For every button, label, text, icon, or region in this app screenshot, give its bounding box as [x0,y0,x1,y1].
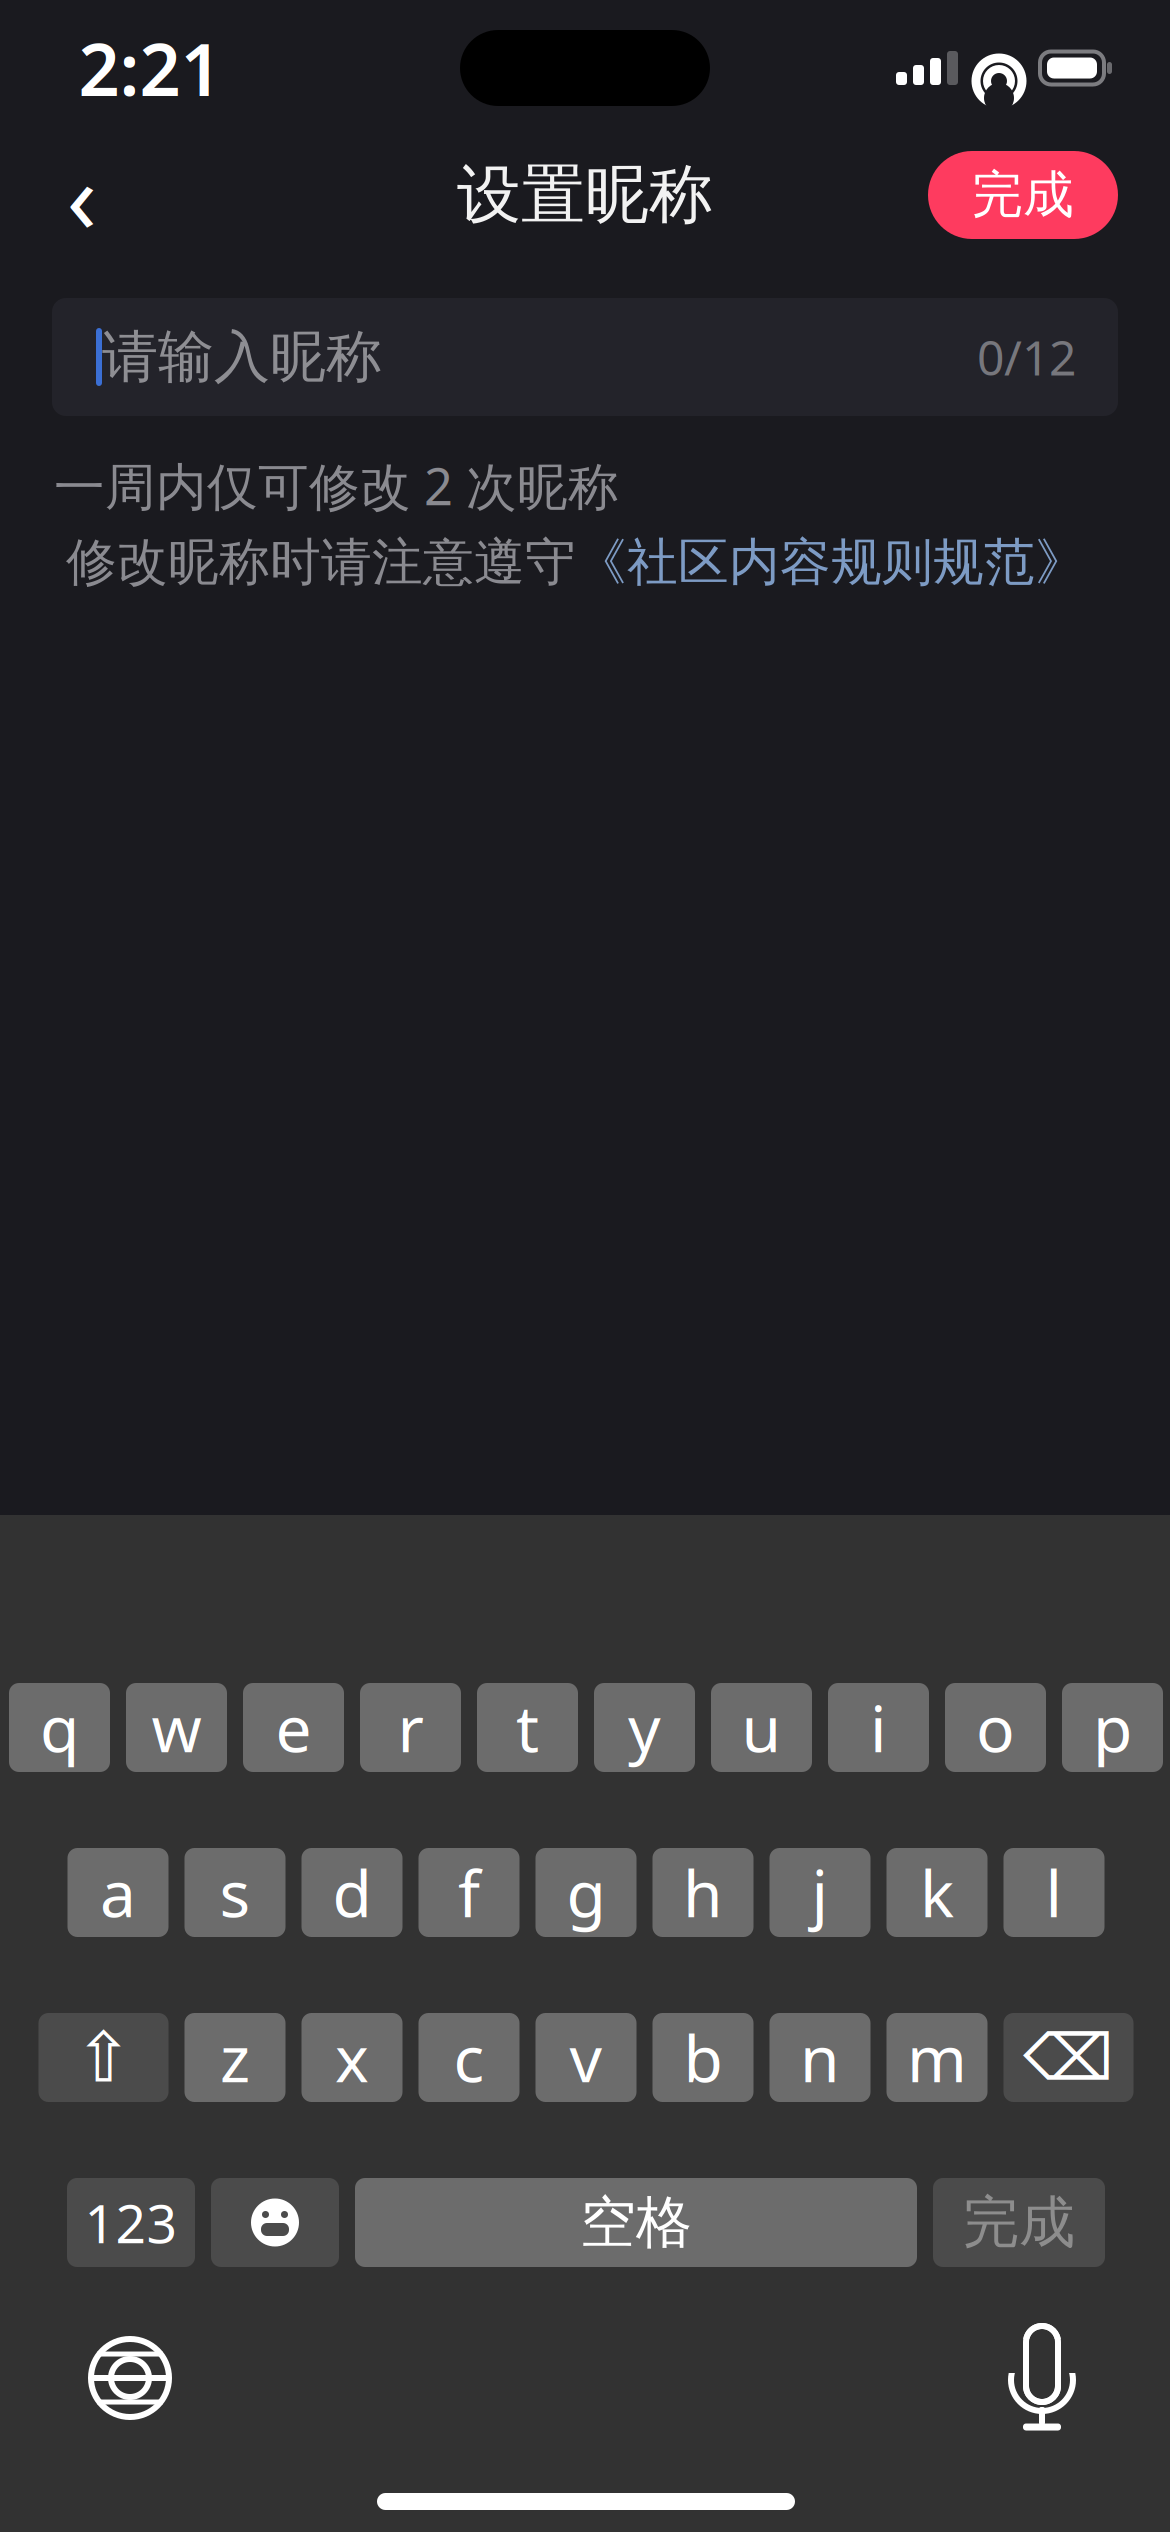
staticText: 2:21 [78,20,221,116]
staticText: b [683,2015,722,2100]
staticText: 《社区内容规则规范》 [576,531,1086,593]
button[interactable]: o [945,1683,1046,1772]
button[interactable]: f [418,1848,519,1937]
button[interactable]: 空格 [355,2178,917,2267]
button[interactable]: q [9,1683,110,1772]
staticText: 修改昵称时请注意遵守 [66,531,576,593]
staticText: p [1093,1685,1132,1770]
staticText: ⇧ [74,2018,132,2097]
button[interactable]: e [243,1683,344,1772]
staticText: w [151,1685,201,1770]
staticText: k [920,1850,954,1935]
button[interactable]: x [301,2013,402,2102]
button[interactable]: y [594,1683,695,1772]
staticText: s [219,1850,250,1935]
staticText: t [516,1685,539,1770]
button[interactable]: 表情 [211,2178,339,2267]
staticText: h [683,1850,723,1935]
staticText: y [628,1685,661,1770]
staticText: 空格 [580,2188,692,2257]
button[interactable]: t [477,1683,578,1772]
button[interactable]: u [711,1683,812,1772]
staticText: z [220,2015,250,2100]
staticText: 完成 [963,2188,1075,2257]
button[interactable]: 《社区内容规则规范》 [576,531,1086,593]
button[interactable]: a [67,1848,168,1937]
button[interactable]: 返回 [30,143,134,247]
staticText: 请输入昵称 [102,323,382,391]
staticText: g [566,1850,605,1935]
staticText: x [335,2015,369,2100]
button[interactable]: d [301,1848,402,1937]
button[interactable]: p [1062,1683,1163,1772]
staticText: f [458,1850,480,1935]
button[interactable]: h [652,1848,753,1937]
staticText: e [275,1685,311,1770]
staticText: 0/12 [977,325,1076,389]
staticText: i [870,1685,887,1770]
button[interactable]: s [184,1848,285,1937]
button[interactable]: 切换键盘 [75,2323,185,2433]
staticText: u [741,1685,781,1770]
button[interactable]: b [652,2013,753,2102]
button[interactable]: z [184,2013,285,2102]
button[interactable]: k [886,1848,987,1937]
button[interactable]: l [1003,1848,1104,1937]
staticText: ‹ [66,129,97,260]
button[interactable]: v [535,2013,636,2102]
staticText: c [453,2015,484,2100]
staticText: n [800,2015,840,2100]
staticText: q [40,1685,79,1770]
button[interactable]: w [126,1683,227,1772]
staticText: 设置昵称 [457,156,713,234]
staticText: 123 [84,2187,177,2258]
button[interactable]: 完成 [933,2178,1105,2267]
staticText: r [397,1685,423,1770]
button[interactable]: m [886,2013,987,2102]
staticText: ⌫ [1023,2021,1114,2094]
button[interactable]: 删除 [1003,2013,1133,2102]
staticText: 一周内仅可修改 2 次昵称 [54,452,619,519]
button[interactable]: g [535,1848,636,1937]
button[interactable]: 语音输入 [987,2323,1097,2433]
button[interactable]: r [360,1683,461,1772]
staticText: 完成 [972,164,1074,226]
button[interactable]: Shift [38,2013,168,2102]
staticText: o [976,1685,1015,1770]
button[interactable]: n [769,2013,870,2102]
button[interactable]: j [769,1848,870,1937]
button[interactable]: c [418,2013,519,2102]
staticText: a [100,1850,136,1935]
button[interactable]: 完成 [928,151,1118,239]
staticText: v [569,2015,602,2100]
button[interactable]: 123 [67,2178,195,2267]
staticText: l [1045,1850,1062,1935]
staticText: d [332,1850,371,1935]
staticText: m [907,2015,967,2100]
button[interactable]: i [828,1683,929,1772]
staticText: j [811,1850,828,1935]
